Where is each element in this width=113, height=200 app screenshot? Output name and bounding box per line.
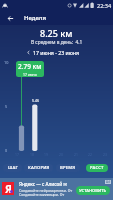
staticText: 5.46: [32, 98, 39, 103]
staticText: В среднем в день: 4.1: [31, 39, 83, 46]
staticText: Неделя: [24, 14, 46, 22]
staticText: 5: [5, 104, 8, 109]
staticText: Ad: [106, 180, 110, 184]
button[interactable]: РАССТ: [86, 164, 108, 172]
staticText: Я: [5, 182, 12, 195]
staticText: 8.25 км: [40, 27, 73, 39]
staticText: ВРЕМЯ: [60, 165, 76, 171]
staticText: УСТАНОВИТЬ: [79, 188, 107, 194]
staticText: КАЛОРИЯ: [28, 165, 50, 171]
staticText: 17 июня - 23 июня: [33, 49, 80, 56]
button[interactable]: Previous week: [24, 48, 33, 57]
button[interactable]: 2.79 км: [16, 61, 44, 77]
staticText: 18: [30, 152, 34, 157]
button[interactable]: Back: [0, 11, 21, 25]
staticText: 22: [88, 152, 92, 157]
button[interactable]: ШАГ: [3, 164, 22, 172]
button[interactable]: ВРЕМЯ: [56, 164, 80, 172]
staticText: ШАГ: [8, 165, 18, 171]
staticText: Создавайте коллекции. От: [19, 192, 65, 197]
staticText: 20: [59, 152, 63, 157]
staticText: Создавайте нейрокартинки. От: [19, 188, 73, 193]
button[interactable]: УСТАНОВИТЬ: [76, 186, 110, 195]
staticText: 21: [74, 152, 78, 157]
staticText: 2.79 км: [18, 62, 42, 71]
staticText: РАССТ: [90, 165, 104, 171]
staticText: 19: [44, 152, 48, 157]
staticText: Яндекс — с Алисой ✉: [19, 181, 68, 187]
staticText: 10: [4, 60, 9, 65]
staticText: 17 июня: [23, 72, 37, 77]
button[interactable]: КАЛОРИЯ: [24, 164, 53, 172]
staticText: 0: [5, 148, 8, 153]
staticText: 23: [103, 152, 107, 157]
staticText: 22:34: [97, 2, 112, 9]
staticText: 17: [15, 152, 19, 157]
